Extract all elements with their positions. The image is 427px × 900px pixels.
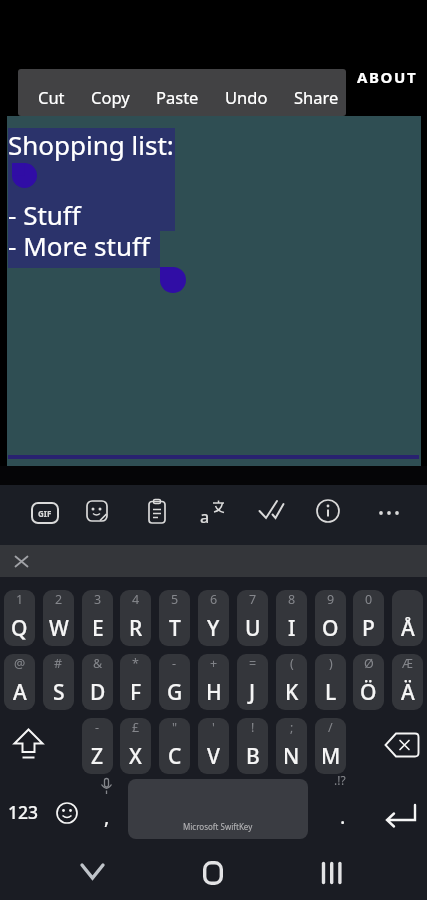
staticText: GIF (38, 508, 52, 519)
staticText: @ (14, 655, 26, 672)
button[interactable]: a (200, 500, 226, 525)
button[interactable]: 5 (159, 590, 190, 646)
button[interactable] (80, 862, 105, 881)
button[interactable]: # (43, 654, 74, 710)
button[interactable] (383, 803, 418, 831)
button[interactable]: @ (4, 654, 35, 710)
button[interactable] (320, 862, 344, 884)
staticText: a (200, 506, 210, 528)
button[interactable]: Undo (225, 86, 268, 108)
staticText: # (54, 655, 63, 672)
staticText: " (172, 719, 178, 736)
button[interactable]: ( (276, 654, 307, 710)
staticText: Cut (38, 86, 65, 108)
staticText: C (168, 742, 182, 771)
button[interactable]: + (198, 654, 229, 710)
staticText: P (362, 614, 375, 643)
button[interactable]: 9 (315, 590, 346, 646)
staticText: R (129, 614, 143, 643)
staticText: F (130, 678, 142, 707)
staticText: 0 (365, 591, 373, 608)
staticText: W (49, 614, 69, 643)
staticText: & (93, 655, 103, 672)
button[interactable] (384, 732, 420, 758)
staticText: H (206, 678, 222, 707)
button[interactable]: Copy (91, 86, 130, 108)
staticText: B (246, 742, 260, 771)
button[interactable] (203, 861, 223, 885)
button[interactable]: Share (294, 86, 339, 108)
button[interactable] (378, 510, 400, 516)
button[interactable]: Æ (392, 654, 423, 710)
staticText: 5 (171, 591, 179, 608)
staticText: Share (294, 86, 339, 108)
button[interactable]: . (340, 803, 346, 830)
staticText: Paste (156, 86, 199, 108)
button[interactable] (86, 500, 108, 522)
staticText: Undo (225, 86, 268, 108)
staticText: / (328, 719, 333, 736)
button[interactable] (258, 498, 285, 521)
button[interactable]: Microsoft SwiftKey (128, 779, 308, 839)
staticText: J (249, 678, 256, 707)
button[interactable]: , (104, 803, 110, 830)
button[interactable]: 2 (43, 590, 74, 646)
button[interactable]: GIF (31, 502, 59, 524)
staticText: + (210, 655, 218, 672)
staticText: L (325, 678, 337, 707)
staticText: Å (401, 614, 415, 643)
staticText: N (283, 742, 300, 771)
button[interactable]: * (120, 654, 151, 710)
button[interactable]: ' (198, 718, 229, 774)
staticText: * (132, 655, 139, 672)
staticText: 2 (55, 591, 63, 608)
staticText: ! (251, 719, 255, 736)
staticText: Shopping list: (8, 127, 174, 162)
button[interactable]: Å (392, 590, 423, 646)
staticText: E (92, 614, 104, 643)
staticText: A (13, 678, 27, 707)
button[interactable] (316, 499, 340, 523)
button[interactable]: 4 (120, 590, 151, 646)
staticText: Q (11, 614, 28, 643)
staticText: 4 (132, 591, 140, 608)
staticText: D (90, 678, 106, 707)
staticText: £ (132, 719, 140, 736)
button[interactable]: ; (276, 718, 307, 774)
button[interactable]: 1 (4, 590, 35, 646)
button[interactable]: 3 (82, 590, 113, 646)
button[interactable]: = (237, 654, 268, 710)
button[interactable]: Ø (353, 654, 384, 710)
staticText: Æ (402, 655, 414, 672)
staticText: ( (290, 655, 294, 672)
button[interactable]: ! (237, 718, 268, 774)
staticText: T (169, 614, 181, 643)
staticText: = (249, 655, 257, 672)
button[interactable]: & (82, 654, 113, 710)
staticText: Copy (91, 86, 130, 108)
button[interactable]: / (315, 718, 346, 774)
staticText: ' (212, 719, 215, 736)
button[interactable] (12, 728, 45, 762)
button[interactable]: - (82, 718, 113, 774)
button[interactable]: Cut (38, 86, 65, 108)
button[interactable]: 7 (237, 590, 268, 646)
button[interactable] (148, 499, 166, 524)
button[interactable] (56, 802, 78, 824)
staticText: S (53, 678, 65, 707)
button[interactable]: 6 (198, 590, 229, 646)
button[interactable]: - (159, 654, 190, 710)
staticText: 6 (210, 591, 218, 608)
button[interactable]: " (159, 718, 190, 774)
button[interactable]: £ (120, 718, 151, 774)
staticText: .!? (334, 772, 346, 788)
button[interactable]: 123 (8, 800, 39, 824)
button[interactable]: 8 (276, 590, 307, 646)
button[interactable]: ABOUT (357, 67, 418, 87)
staticText: O (322, 614, 339, 643)
button[interactable]: Paste (156, 86, 199, 108)
staticText: 1 (16, 591, 24, 608)
staticText: V (207, 742, 220, 771)
button[interactable]: ) (315, 654, 346, 710)
button[interactable]: 0 (353, 590, 384, 646)
